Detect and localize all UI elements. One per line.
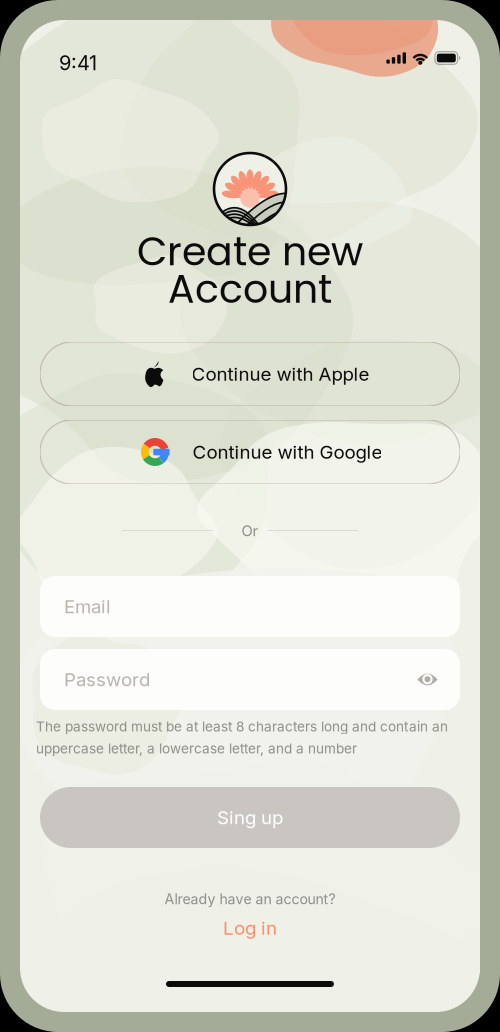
staticText: Account: [168, 261, 332, 317]
staticText: Create new: [137, 224, 363, 279]
button[interactable]: Continue with Google: [40, 420, 460, 484]
staticText: Or: [241, 522, 258, 540]
staticText: Password: [64, 668, 150, 691]
staticText: Already have an account?: [164, 890, 335, 907]
staticText: Log in: [223, 917, 277, 939]
staticText: Email: [64, 595, 111, 618]
button[interactable]: Sing up: [40, 787, 460, 848]
button[interactable]: Continue with Apple: [40, 342, 460, 406]
staticText: The password must be at least 8 characte…: [36, 718, 448, 735]
staticText: Sing up: [217, 806, 283, 829]
staticText: Continue with Apple: [191, 363, 369, 385]
staticText: uppercase letter, a lowercase letter, an…: [36, 740, 357, 757]
button[interactable]: Log in: [202, 914, 298, 942]
staticText: 9:41: [59, 51, 97, 75]
staticText: Continue with Google: [192, 441, 382, 463]
